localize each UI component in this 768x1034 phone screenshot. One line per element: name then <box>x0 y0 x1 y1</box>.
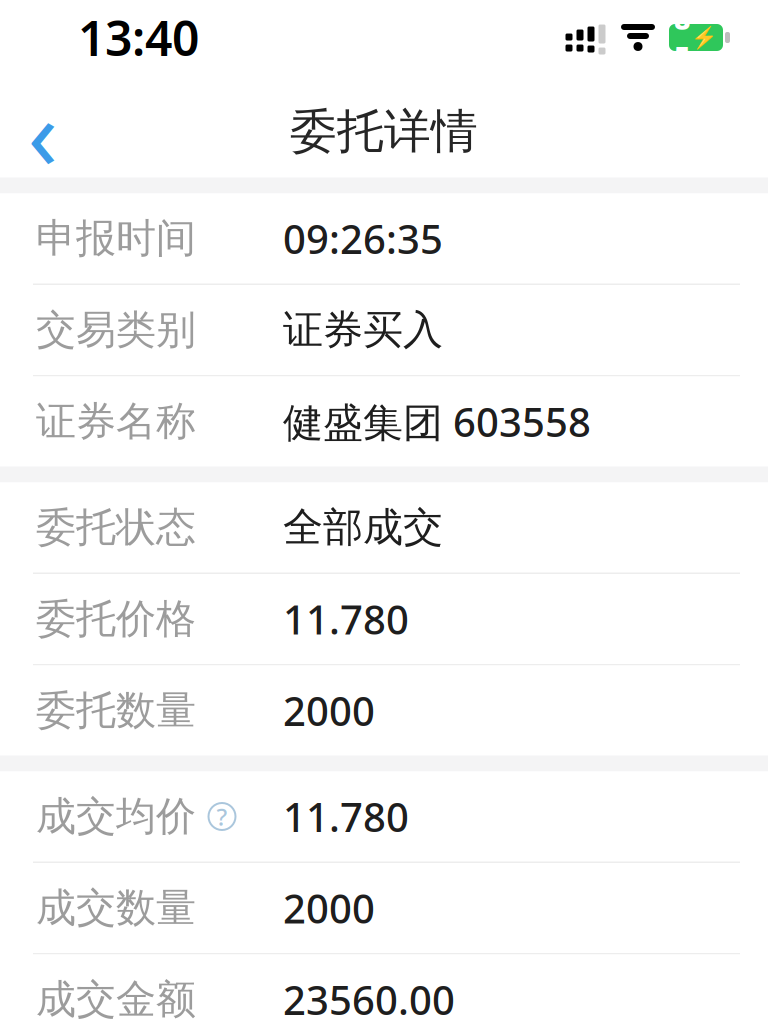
staticText: 2000 <box>283 881 375 934</box>
staticText: ‹ <box>27 66 58 197</box>
staticText: ? <box>216 801 227 832</box>
staticText: 23560.00 <box>283 973 455 1026</box>
staticText: 09:26:35 <box>283 212 443 265</box>
staticText: 健盛集团 603558 <box>283 395 591 448</box>
staticText: 委托状态 <box>36 503 196 552</box>
staticText: 证券名称 <box>36 397 196 446</box>
staticText: 全部成交 <box>283 503 443 552</box>
staticText: 委托价格 <box>36 594 196 643</box>
staticText: 成交均价 <box>36 792 196 841</box>
staticText: 2000 <box>283 684 375 737</box>
staticText: 11.780 <box>283 790 409 843</box>
staticText: 85 <box>674 0 690 75</box>
staticText: 成交金额 <box>36 975 196 1024</box>
staticText: 13:40 <box>78 6 199 69</box>
staticText: 11.780 <box>283 592 409 645</box>
staticText: 委托数量 <box>36 686 196 735</box>
staticText: 申报时间 <box>36 214 196 263</box>
staticText: 委托详情 <box>290 103 478 160</box>
button[interactable]: Back <box>0 88 86 174</box>
staticText: ⚡ <box>691 25 718 50</box>
staticText: 证券买入 <box>283 305 443 354</box>
staticText: 交易类别 <box>36 305 196 354</box>
button[interactable]: 帮助 <box>204 798 240 834</box>
staticText: 成交数量 <box>36 883 196 932</box>
